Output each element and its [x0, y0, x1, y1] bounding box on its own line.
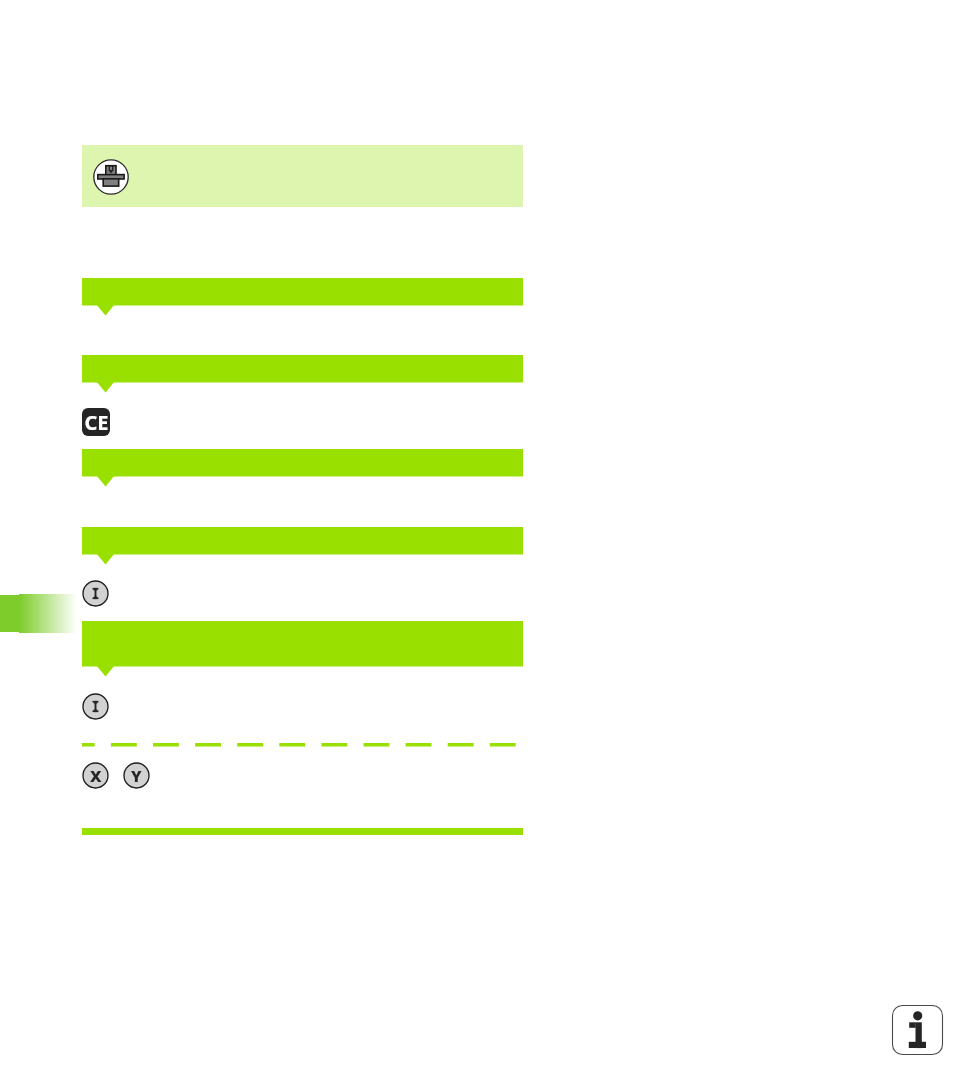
staticText: Y — [131, 765, 142, 787]
button[interactable]: CE — [82, 408, 110, 436]
button[interactable] — [82, 527, 523, 566]
staticText: X — [90, 765, 102, 787]
button[interactable]: X — [82, 762, 109, 789]
button[interactable]: Y — [123, 762, 150, 789]
button[interactable]: Machine — [93, 159, 129, 195]
button[interactable] — [82, 693, 109, 720]
button[interactable] — [82, 355, 523, 394]
staticText: CE — [84, 409, 109, 436]
button[interactable] — [82, 145, 523, 207]
button[interactable] — [82, 278, 523, 317]
button[interactable] — [82, 449, 523, 488]
button[interactable]: Info — [892, 1005, 943, 1055]
button[interactable] — [82, 621, 523, 678]
button[interactable] — [82, 580, 109, 607]
